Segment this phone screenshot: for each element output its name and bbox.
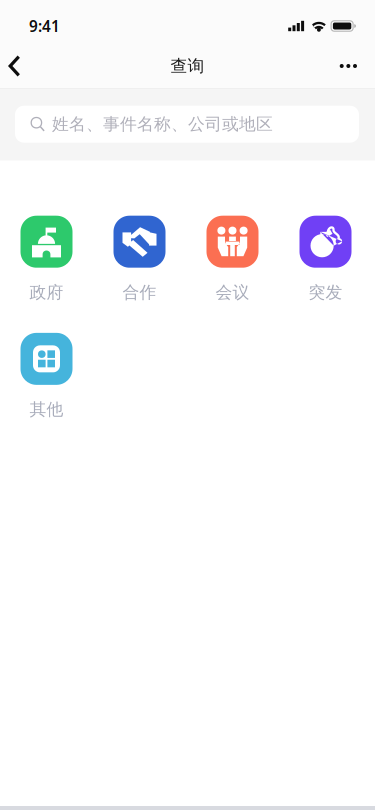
button[interactable]: Back	[0, 44, 42, 88]
staticText: 政府	[29, 282, 63, 303]
staticText: 其他	[29, 399, 63, 420]
staticText: 姓名、事件名称、公司或地区	[52, 114, 273, 135]
button[interactable]: 突发	[279, 216, 372, 303]
staticText: 合作	[122, 282, 156, 303]
button[interactable]: 会议	[186, 216, 279, 303]
staticText: 突发	[308, 282, 342, 303]
staticText: 查询	[170, 55, 204, 76]
button[interactable]: 政府	[0, 216, 93, 303]
button[interactable]: 其他	[0, 333, 93, 420]
staticText: 会议	[215, 282, 249, 303]
button[interactable]: 姓名、事件名称、公司或地区	[15, 106, 359, 143]
staticText: 9:41	[29, 16, 60, 36]
button[interactable]: 合作	[93, 216, 186, 303]
button[interactable]: More options	[322, 44, 375, 88]
